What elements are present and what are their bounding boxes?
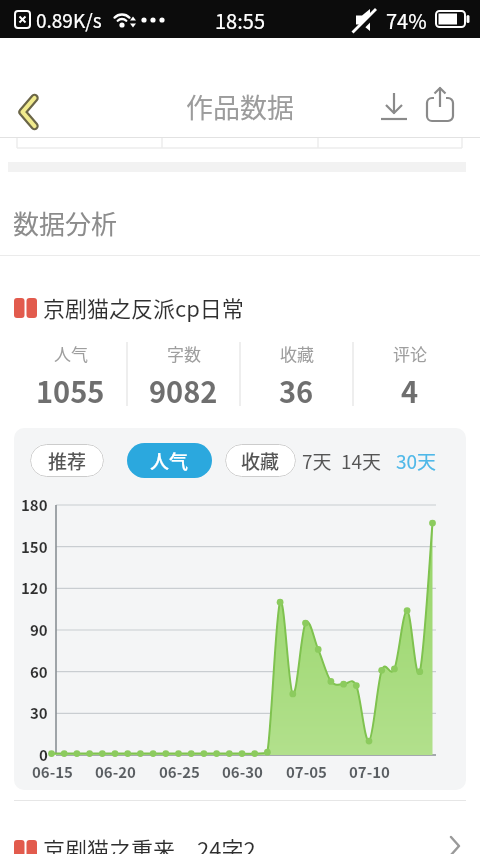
staticText: 06-25 xyxy=(159,761,200,783)
staticText: 人气 xyxy=(150,447,189,475)
staticText: 06-15 xyxy=(32,761,73,783)
staticText: 30 xyxy=(30,702,48,724)
staticText: 74% xyxy=(386,6,427,35)
staticText: 作品数据 xyxy=(0,87,480,126)
staticText: 7天 xyxy=(302,447,332,475)
staticText: 数据分析 xyxy=(13,204,118,242)
staticText: 收藏 xyxy=(241,447,280,475)
staticText: 推荐 xyxy=(48,447,87,475)
button[interactable] xyxy=(418,80,464,126)
staticText: 1055 xyxy=(36,369,105,409)
staticText: 人气 xyxy=(54,341,88,365)
staticText: 字数 xyxy=(167,341,201,365)
button[interactable]: 7天 xyxy=(297,444,337,477)
staticText: 0 xyxy=(39,744,48,766)
button[interactable] xyxy=(372,82,416,126)
staticText: 36 xyxy=(279,369,314,409)
button[interactable]: 京剧猫之重来 24字2 xyxy=(0,826,480,854)
staticText: 收藏 xyxy=(280,341,314,365)
staticText: 京剧猫之反派cp日常 xyxy=(43,291,244,323)
staticText: 18:55 xyxy=(0,6,480,35)
button[interactable]: 京剧猫之反派cp日常 xyxy=(0,285,480,331)
staticText: 150 xyxy=(21,536,48,558)
staticText: 14天 xyxy=(341,447,382,475)
button[interactable] xyxy=(4,79,52,131)
staticText: 120 xyxy=(21,577,48,599)
button[interactable]: 30天 xyxy=(393,444,439,477)
staticText: 06-20 xyxy=(95,761,136,783)
staticText: 4 xyxy=(401,369,419,409)
staticText: 评论 xyxy=(393,341,427,365)
staticText: 0.89K/s xyxy=(36,6,102,34)
button[interactable]: 推荐 xyxy=(30,444,104,477)
staticText: 30天 xyxy=(396,447,437,475)
staticText: 60 xyxy=(30,661,48,683)
staticText: 07-05 xyxy=(286,761,327,783)
staticText: 07-10 xyxy=(349,761,390,783)
staticText: 180 xyxy=(21,494,48,516)
button[interactable]: 人气 xyxy=(127,443,212,478)
staticText: 90 xyxy=(30,619,48,641)
staticText: 06-30 xyxy=(222,761,263,783)
staticText: 9082 xyxy=(149,369,218,409)
button[interactable]: 收藏 xyxy=(225,444,296,477)
button[interactable]: 14天 xyxy=(338,444,384,477)
staticText: 京剧猫之重来 24字2 xyxy=(43,832,256,854)
